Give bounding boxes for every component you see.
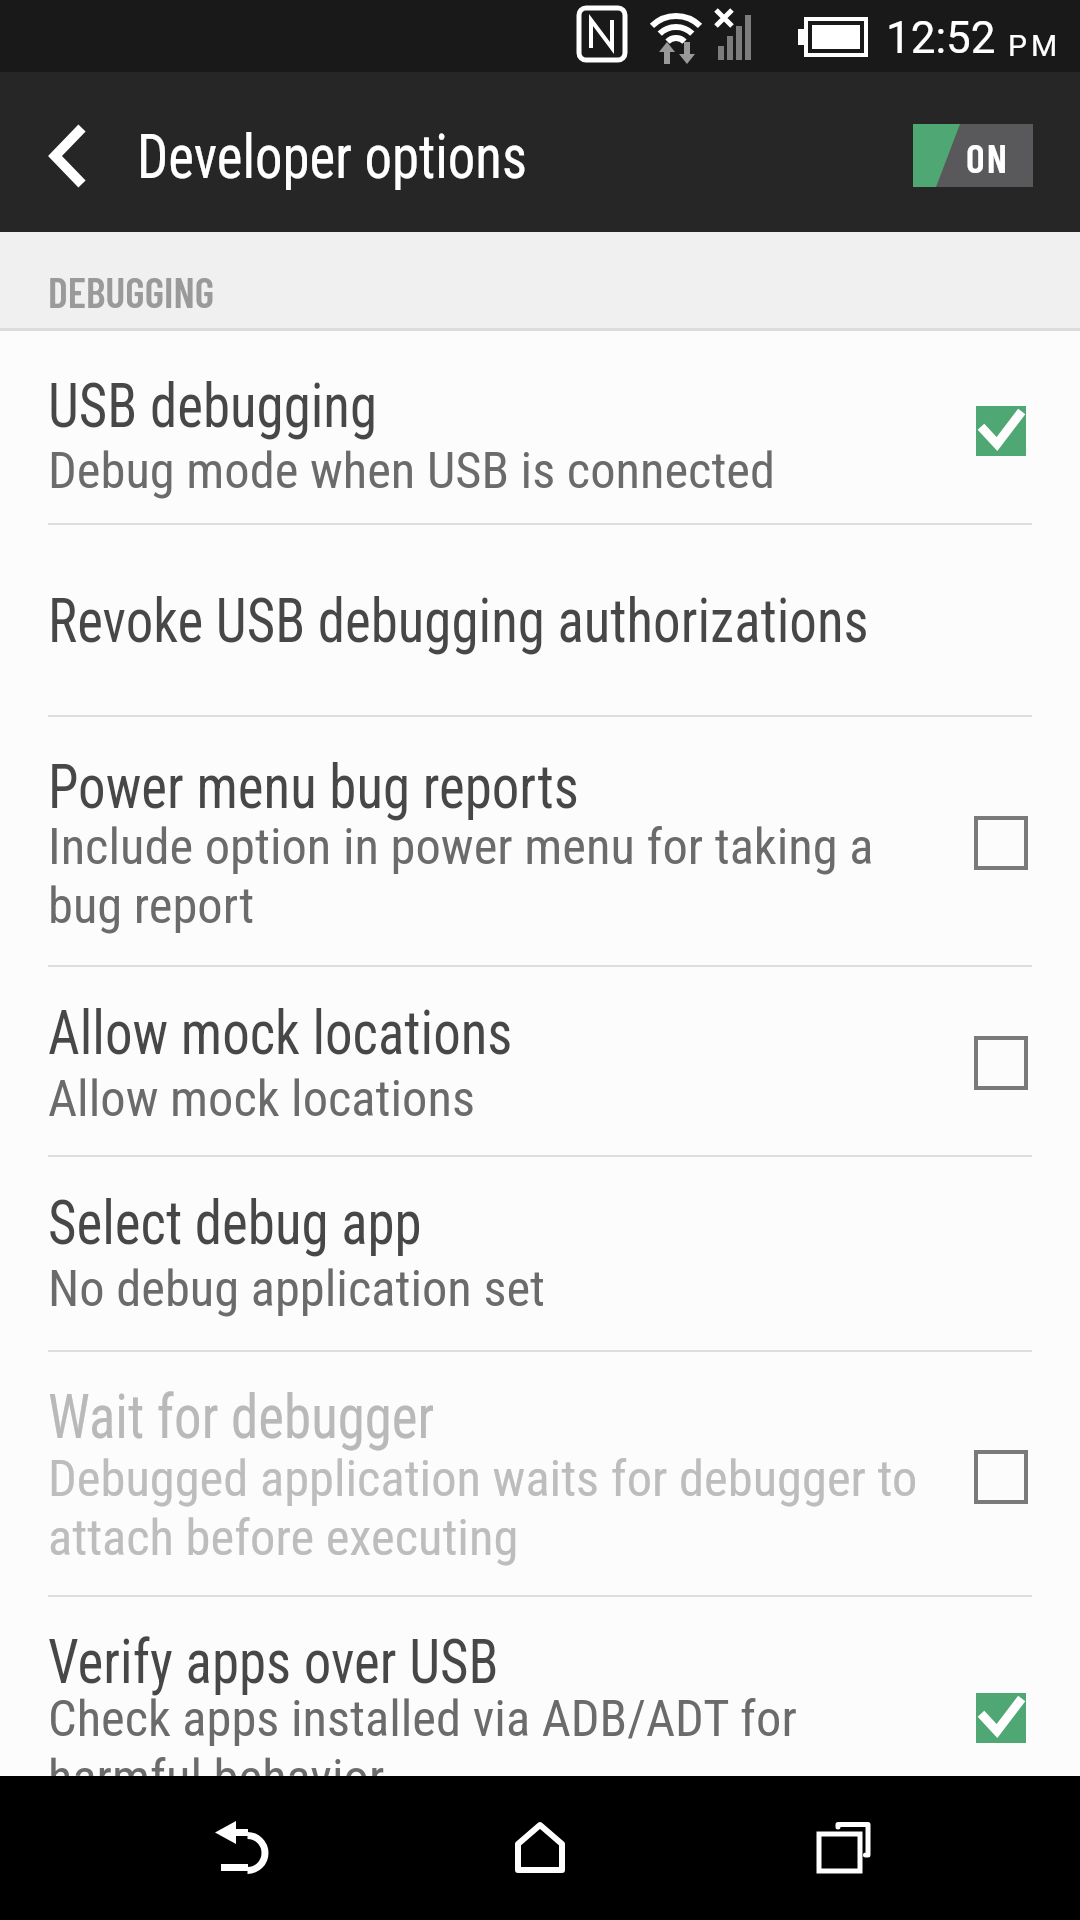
staticText: Include option in power menu for taking … [48,818,874,936]
staticText: Select debug app [48,1186,422,1259]
button[interactable]: Verify apps over USB [0,1596,1080,1776]
button[interactable]: Power menu bug reports [0,716,1080,966]
staticText: Debugged application waits for debugger … [48,1450,918,1568]
staticText: Wait for debugger [48,1380,435,1453]
staticText: Allow mock locations [48,1070,475,1129]
staticText: Allow mock locations [48,996,513,1069]
button[interactable]: Revoke USB debugging authorizations [0,524,1080,716]
staticText: USB debugging [48,369,378,442]
button[interactable] [20,100,120,200]
button[interactable] [794,1796,894,1896]
button[interactable] [190,1796,290,1896]
staticText: PM [1008,28,1062,63]
button[interactable]: ON [913,124,1033,187]
staticText: Revoke USB debugging authorizations [48,584,869,657]
staticText: Developer options [137,120,528,193]
button[interactable]: Select debug app [0,1156,1080,1351]
button[interactable]: USB debugging [0,330,1080,524]
staticText: 12:52 [886,12,996,64]
staticText: ON [966,133,1009,181]
staticText: DEBUGGING [48,266,215,316]
staticText: Power menu bug reports [48,750,579,823]
button[interactable]: Allow mock locations [0,966,1080,1156]
button[interactable] [490,1796,590,1896]
button[interactable]: Wait for debugger [0,1351,1080,1596]
staticText: Verify apps over USB [48,1625,499,1698]
staticText: Check apps installed via ADB/ADT for har… [48,1690,797,1808]
staticText: Debug mode when USB is connected [48,442,775,501]
staticText: No debug application set [48,1260,546,1319]
